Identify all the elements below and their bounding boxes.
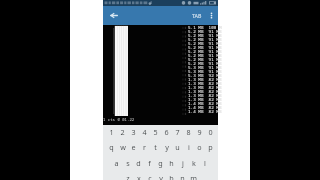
staticText: a [114,158,119,168]
staticText: 2 [120,127,125,137]
staticText: 7 [175,127,180,137]
button[interactable]: x [133,170,144,180]
button[interactable]: 4 [139,124,150,139]
button[interactable]: d [133,155,144,170]
staticText: 0 [208,127,213,137]
button[interactable]: j [177,155,188,170]
button[interactable]: p [205,139,216,154]
button[interactable]: 1 [105,124,117,139]
button[interactable]: y [161,139,172,154]
staticText: e [131,142,136,152]
staticText: y [165,142,169,152]
button[interactable]: c [144,170,155,180]
staticText: f [148,158,151,168]
button[interactable]: 5 [150,124,161,139]
staticText: 5 [153,127,158,137]
staticText: 8 [186,127,191,137]
staticText: g [158,158,163,168]
staticText: s [126,158,130,168]
button[interactable]: v [155,170,166,180]
button[interactable]: g [155,155,166,170]
button[interactable]: k [188,155,199,170]
button[interactable]: e [128,139,139,154]
button[interactable]: h [166,155,177,170]
staticText: l [204,158,206,168]
button[interactable]: 2 [117,124,128,139]
button[interactable]: 8 [183,124,194,139]
staticText: 1 cts 0 01.22 [103,117,135,122]
staticText: m [190,173,197,180]
button[interactable]: r [139,139,150,154]
staticText: 4 [142,127,147,137]
staticText: n [180,173,185,180]
button[interactable]: 9 [194,124,205,139]
staticText: TAB [192,12,202,19]
button[interactable]: 3 [128,124,139,139]
button[interactable]: 7 [172,124,183,139]
button[interactable]: Back [103,6,124,25]
button[interactable]: o [194,139,205,154]
staticText: x [137,173,141,180]
button[interactable]: f [144,155,155,170]
staticText: u [175,142,180,152]
staticText: d [136,158,141,168]
staticText: 1 [109,127,114,137]
staticText: t [154,142,157,152]
button[interactable]: 6 [161,124,172,139]
button[interactable]: a [111,155,122,170]
button[interactable]: z [122,170,133,180]
staticText: v [159,173,163,180]
staticText: p [208,142,213,152]
button[interactable]: b [166,170,177,180]
staticText: i [188,142,190,152]
staticText: 5.1 MB 108 M 5.2 MB 91 MB 5.2 MB 91 MB 5… [188,24,222,115]
button[interactable]: t [150,139,161,154]
staticText: b [169,173,174,180]
button[interactable]: s [122,155,133,170]
staticText: q [109,142,114,152]
staticText: z [126,173,130,180]
button[interactable]: More options [204,6,218,25]
staticText: j [182,158,184,168]
staticText: 9 [197,127,202,137]
button[interactable]: l [199,155,210,170]
staticText: r [143,142,146,152]
button[interactable]: u [172,139,183,154]
button[interactable]: i [183,139,194,154]
button[interactable]: n [177,170,188,180]
button[interactable]: q [105,139,117,154]
staticText: 6 [164,127,169,137]
button[interactable]: m [188,170,199,180]
button[interactable]: TAB [190,6,204,25]
staticText: h [169,158,174,168]
staticText: 3 [131,127,136,137]
button[interactable]: 0 [205,124,216,139]
staticText: w [120,142,126,152]
staticText: c [148,173,152,180]
staticText: k [192,158,196,168]
staticText: o [197,142,202,152]
button[interactable]: w [117,139,128,154]
